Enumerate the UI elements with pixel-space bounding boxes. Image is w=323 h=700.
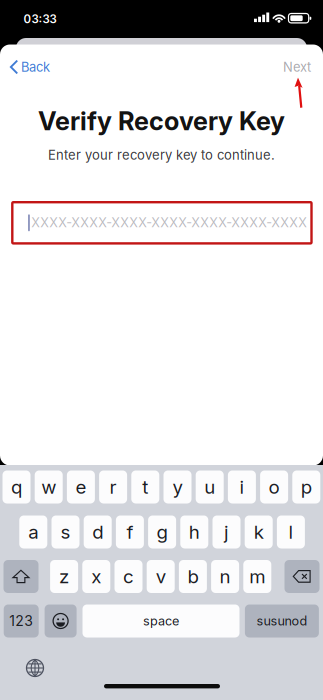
staticText: g — [157, 521, 168, 543]
staticText: XXXX-XXXX-XXXX-XXXX-XXXX-XXXX-XXXX — [31, 215, 307, 230]
button[interactable]: f — [116, 515, 144, 548]
button[interactable]: v — [147, 560, 175, 593]
button[interactable]: d — [84, 515, 112, 548]
button[interactable]: l — [277, 515, 305, 548]
button[interactable]: space — [82, 604, 239, 637]
button[interactable]: h — [180, 515, 208, 548]
button[interactable]: Shift — [3, 560, 38, 593]
button[interactable]: o — [260, 470, 288, 503]
button[interactable]: u — [196, 470, 224, 503]
staticText: j — [224, 521, 229, 543]
staticText: l — [288, 521, 293, 543]
button[interactable]: e — [67, 470, 95, 503]
staticText: p — [301, 476, 312, 498]
button[interactable]: p — [292, 470, 320, 503]
staticText: Next — [283, 59, 311, 75]
button[interactable]: Change keyboard — [26, 659, 44, 677]
button[interactable]: y — [163, 470, 191, 503]
staticText: r — [110, 476, 117, 498]
staticText: i — [239, 476, 244, 498]
staticText: q — [11, 476, 22, 498]
button[interactable]: w — [35, 470, 63, 503]
staticText: w — [41, 476, 56, 498]
staticText: s — [60, 521, 70, 543]
button[interactable]: k — [245, 515, 273, 548]
button[interactable]: Next — [243, 54, 311, 80]
staticText: f — [126, 521, 133, 543]
staticText: space — [143, 613, 179, 629]
button[interactable]: Back — [9, 54, 89, 80]
staticText: Enter your recovery key to continue. — [48, 147, 275, 163]
button[interactable]: c — [114, 560, 142, 593]
button[interactable]: x — [82, 560, 110, 593]
button[interactable]: j — [212, 515, 240, 548]
staticText: x — [91, 565, 101, 588]
button[interactable]: t — [131, 470, 159, 503]
staticText: k — [254, 521, 264, 543]
button[interactable]: q — [2, 470, 30, 503]
button[interactable]: 123 — [4, 604, 39, 637]
button[interactable]: g — [148, 515, 176, 548]
button[interactable]: r — [99, 470, 127, 503]
button[interactable]: s — [51, 515, 79, 548]
staticText: o — [269, 476, 280, 498]
staticText: e — [75, 476, 86, 498]
staticText: b — [187, 565, 198, 588]
staticText: c — [123, 565, 134, 588]
button[interactable]: n — [211, 560, 239, 593]
staticText: v — [156, 565, 166, 588]
button[interactable]: Delete — [284, 560, 319, 593]
staticText: h — [189, 521, 200, 543]
staticText: z — [59, 565, 69, 588]
staticText: m — [249, 565, 265, 588]
button[interactable]: susunod — [245, 604, 319, 637]
button[interactable]: Emoji — [45, 604, 77, 637]
staticText: n — [220, 565, 231, 588]
staticText: u — [204, 476, 215, 498]
staticText: 123 — [9, 612, 33, 629]
staticText: y — [172, 476, 182, 498]
staticText: t — [142, 476, 148, 498]
staticText: susunod — [256, 613, 307, 629]
staticText: d — [92, 521, 103, 543]
button[interactable]: z — [50, 560, 78, 593]
button[interactable]: a — [19, 515, 47, 548]
staticText: Verify Recovery Key — [38, 106, 285, 136]
button[interactable]: m — [243, 560, 271, 593]
button[interactable]: i — [228, 470, 256, 503]
staticText: a — [28, 521, 38, 543]
button[interactable]: b — [179, 560, 207, 593]
staticText: Back — [21, 59, 50, 75]
staticText: 03:33 — [23, 12, 56, 26]
